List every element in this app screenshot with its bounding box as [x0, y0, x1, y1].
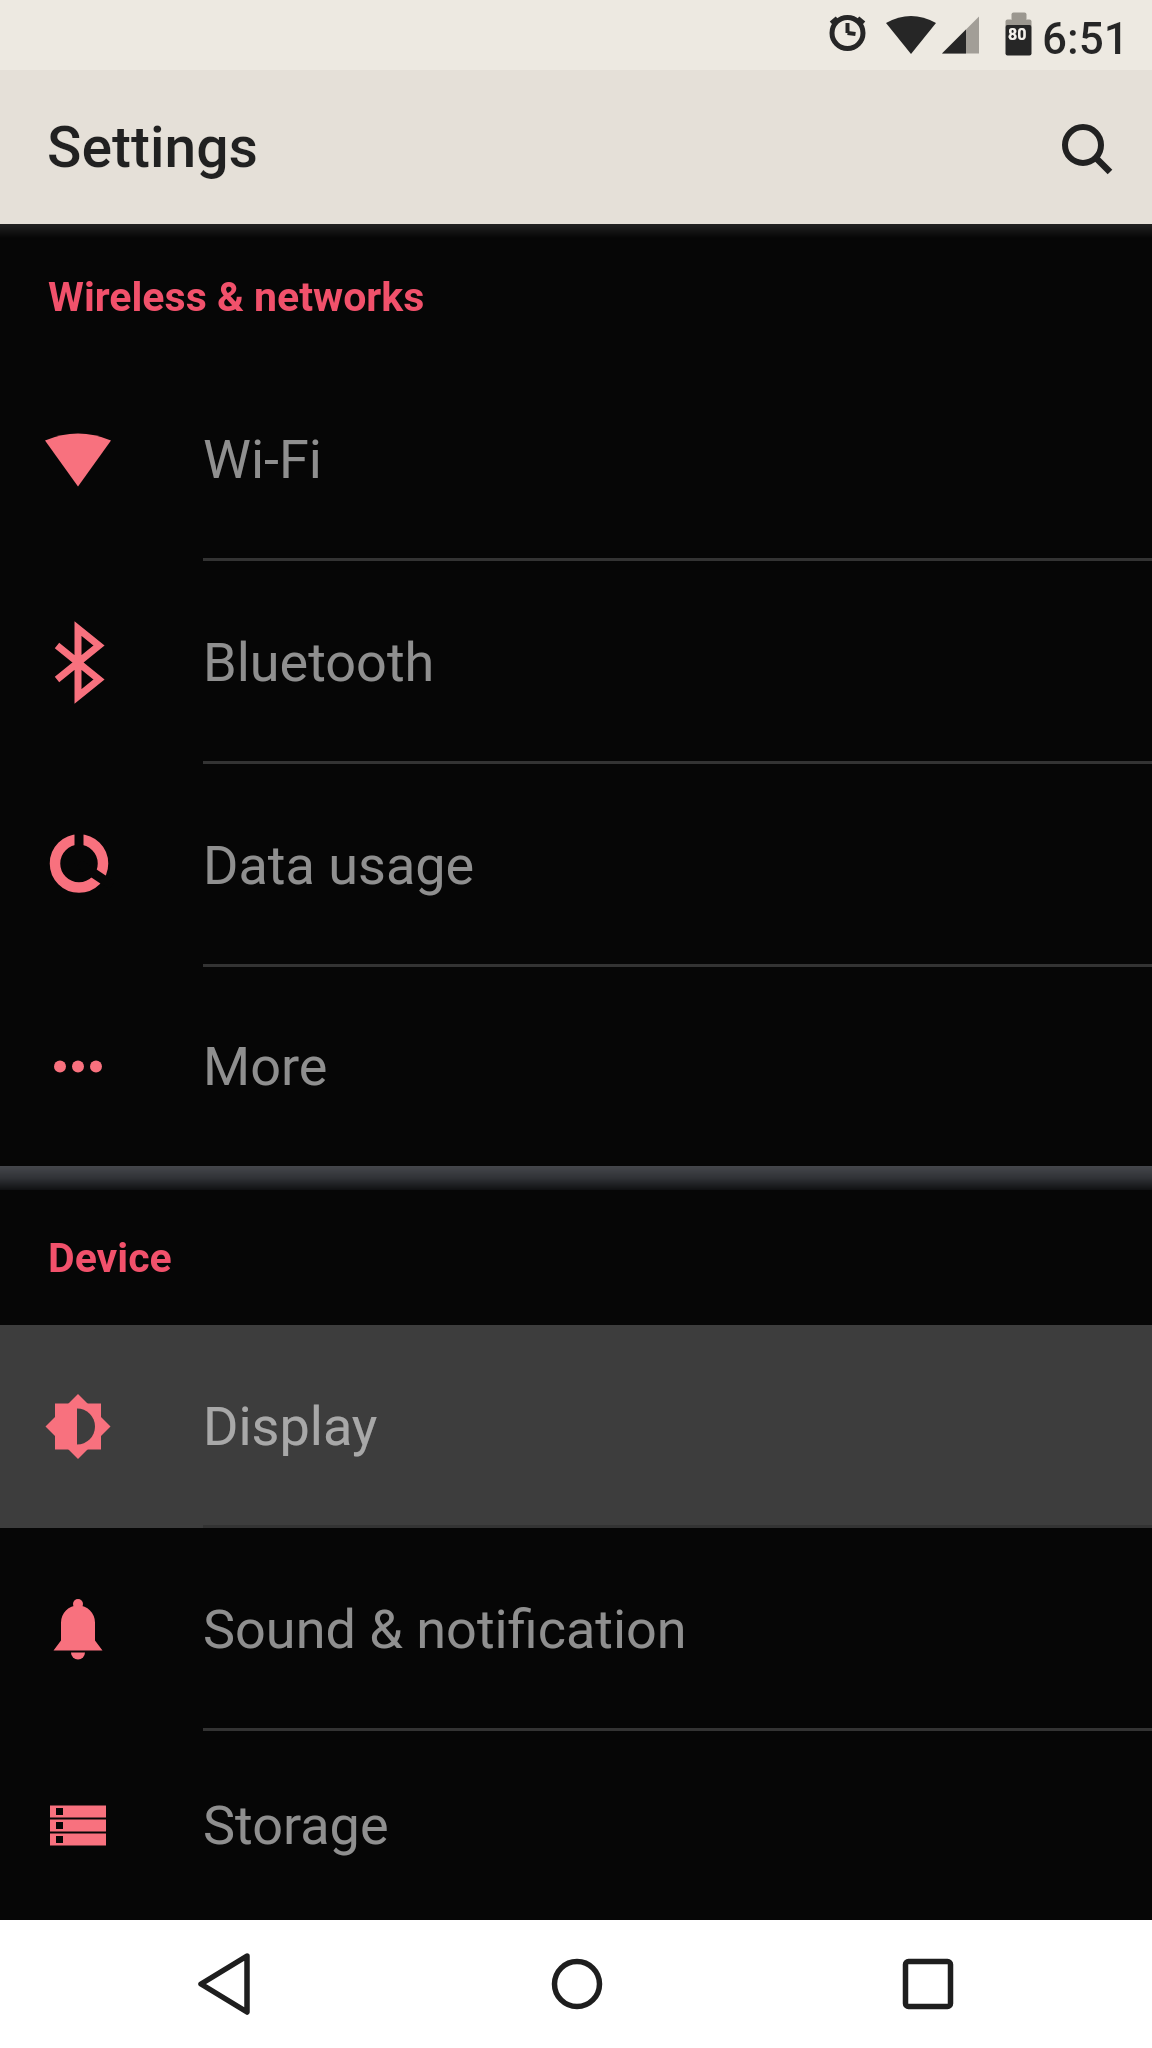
staticText: Bluetooth: [203, 631, 435, 694]
button[interactable]: [529, 1936, 625, 2032]
staticText: Sound & notification: [203, 1598, 687, 1661]
staticText: 80: [1008, 25, 1027, 44]
button[interactable]: Bluetooth: [0, 561, 1152, 764]
staticText: 6:51: [1042, 13, 1129, 65]
button[interactable]: Data usage: [0, 764, 1152, 967]
staticText: Wi-Fi: [203, 428, 322, 491]
button[interactable]: Sound & notification: [0, 1528, 1152, 1731]
staticText: Device: [48, 1234, 172, 1282]
staticText: Data usage: [203, 834, 475, 897]
button[interactable]: Wi-Fi: [0, 358, 1152, 561]
staticText: Storage: [203, 1794, 389, 1857]
staticText: Display: [203, 1395, 378, 1458]
button[interactable]: [880, 1936, 976, 2032]
staticText: Wireless & networks: [48, 273, 425, 321]
staticText: Settings: [47, 114, 259, 181]
button[interactable]: [177, 1936, 273, 2032]
button[interactable]: Storage: [0, 1731, 1152, 1920]
button[interactable]: [1052, 115, 1116, 179]
staticText: More: [203, 1035, 328, 1098]
button[interactable]: Display: [0, 1325, 1152, 1528]
button[interactable]: More: [0, 967, 1152, 1166]
